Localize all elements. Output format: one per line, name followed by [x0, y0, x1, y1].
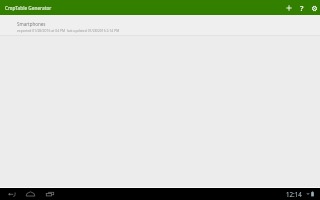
staticText: ? — [300, 3, 304, 13]
button[interactable]: Help — [296, 2, 308, 14]
staticText: CmpTable Generator — [5, 5, 52, 11]
staticText: exported 01/28/2016 at 04 PM last update… — [17, 28, 120, 33]
button[interactable]: Recent apps — [44, 188, 56, 200]
button[interactable]: Settings — [308, 2, 320, 14]
staticText: 12:14 — [286, 190, 302, 198]
staticText: Smartphones — [17, 21, 46, 27]
button[interactable]: Home — [24, 188, 36, 200]
button[interactable]: Back — [6, 188, 18, 200]
button[interactable]: Smartphones — [0, 15, 320, 35]
button[interactable]: Add — [283, 2, 295, 14]
